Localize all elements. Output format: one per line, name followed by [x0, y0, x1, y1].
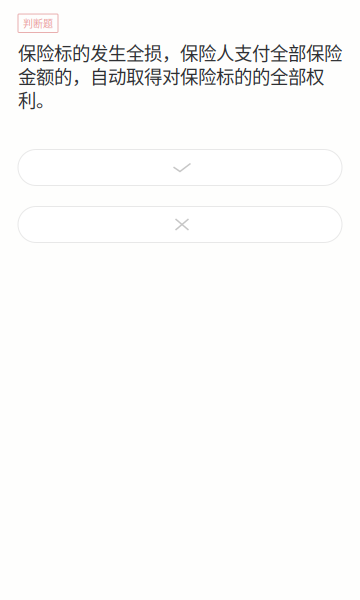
- button[interactable]: 正确: [18, 149, 342, 185]
- staticText: 判断题: [23, 16, 53, 30]
- staticText: 保险标的发生全损，保险人支付全部保险金额的，自动取得对保险标的的全部权利。: [18, 39, 342, 112]
- button[interactable]: 错误: [18, 206, 342, 242]
